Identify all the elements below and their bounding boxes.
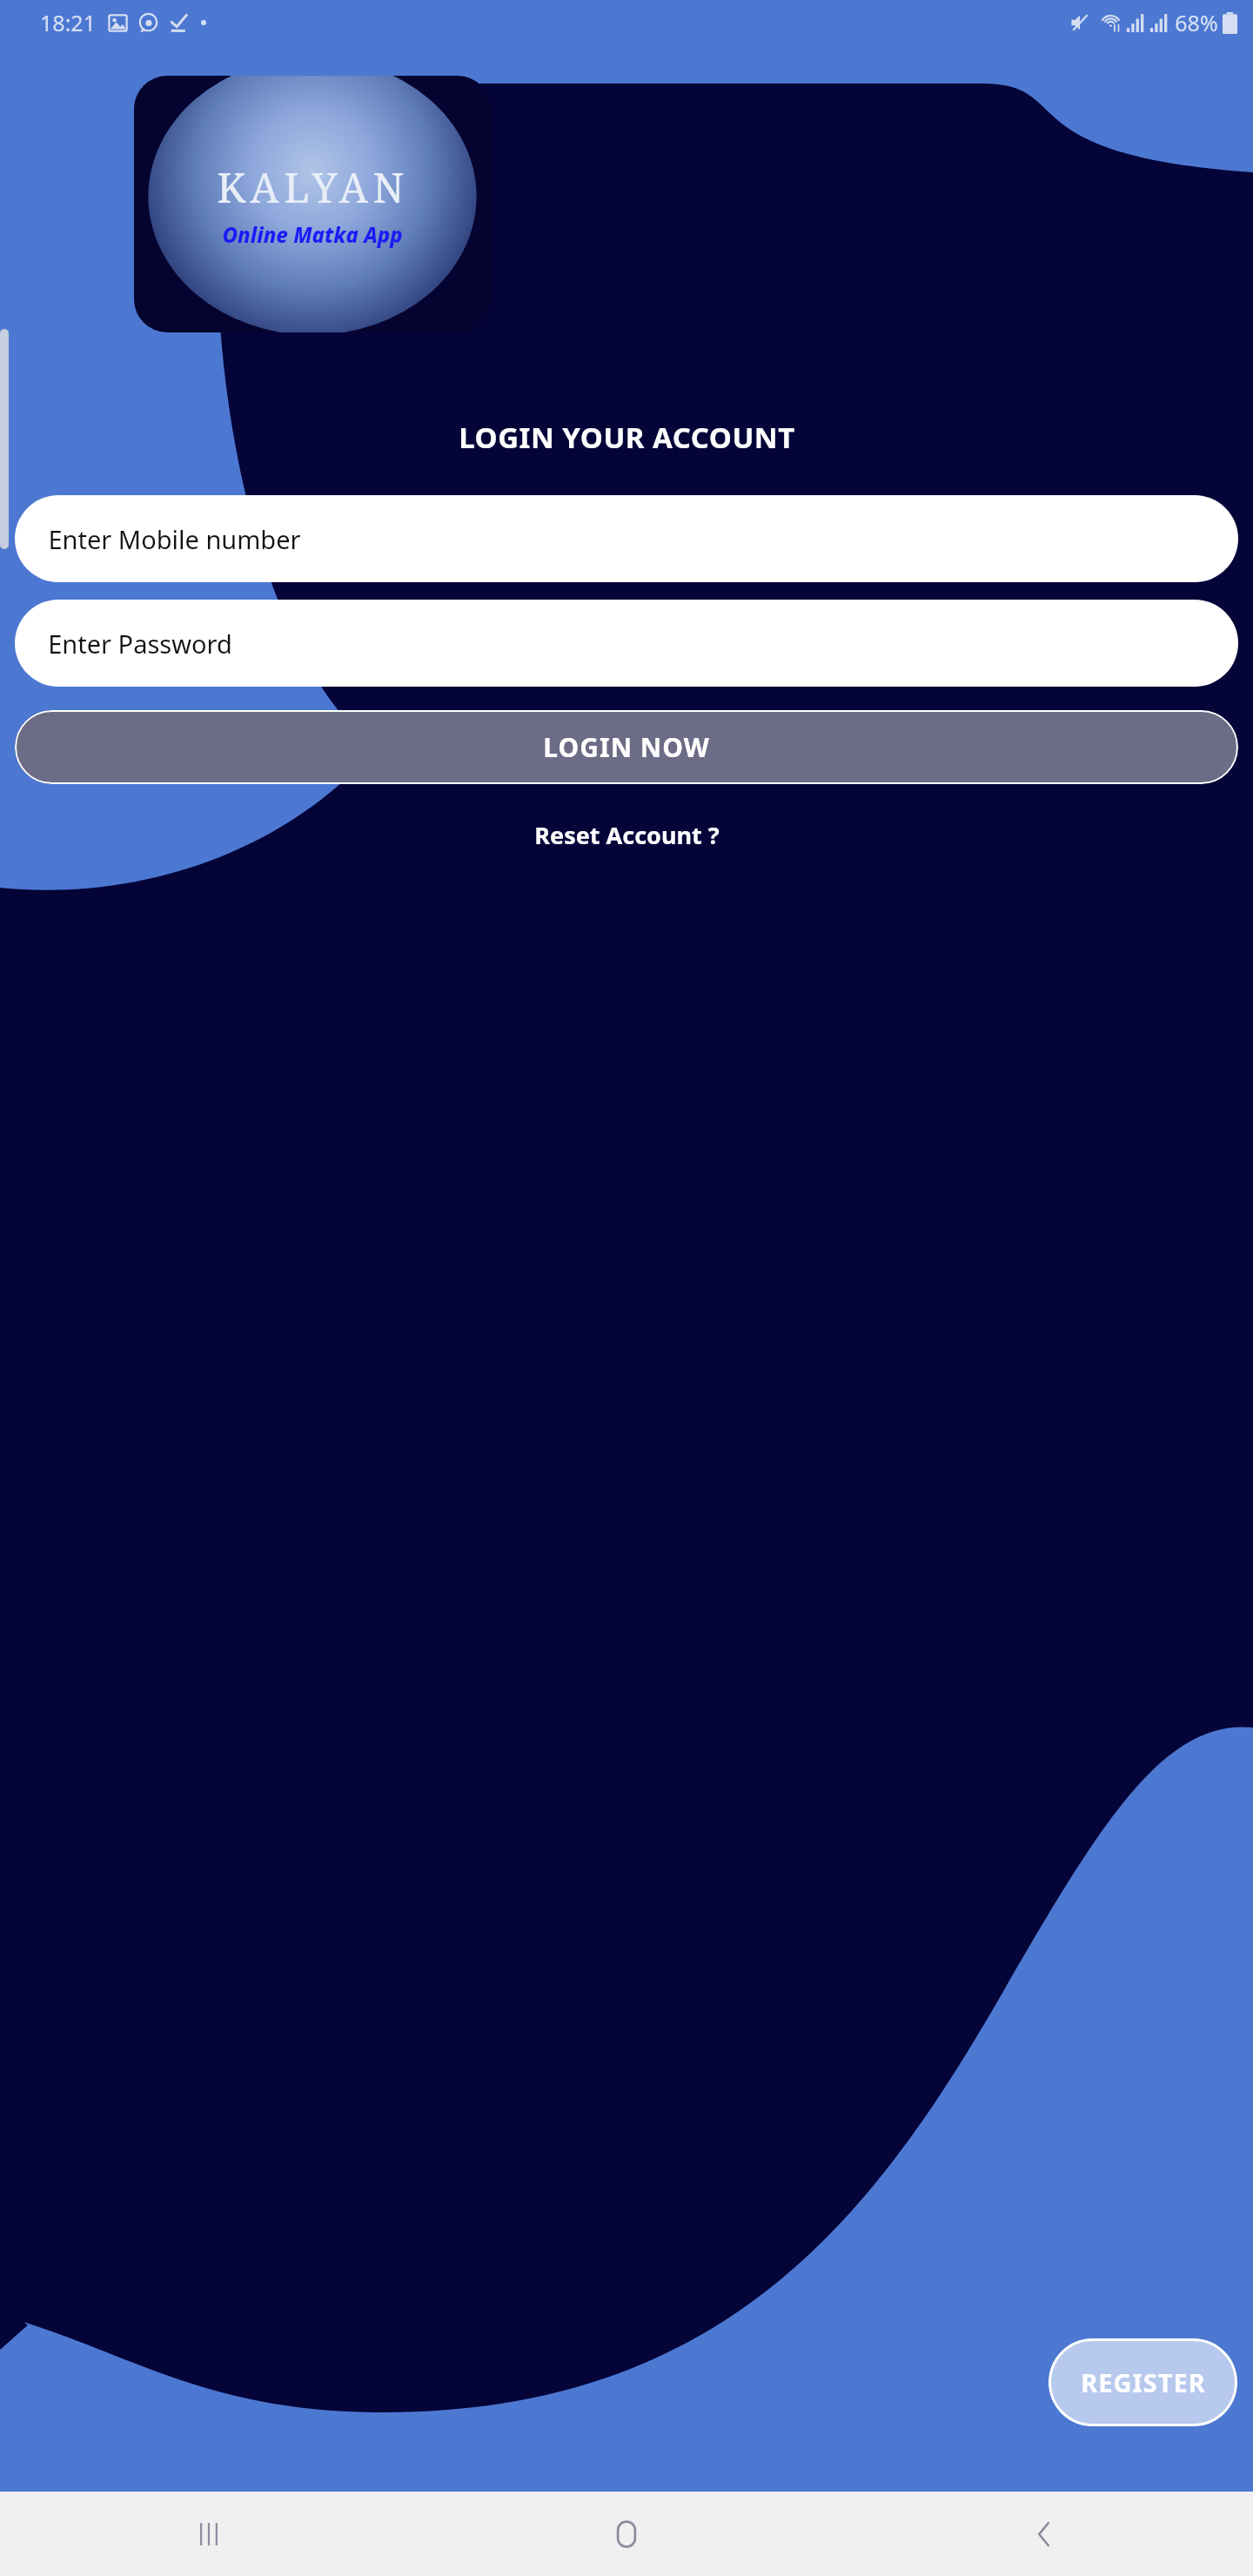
staticText: Online Matka App	[222, 220, 403, 249]
staticText: Reset Account ?	[534, 819, 720, 851]
staticText: Enter Mobile number	[48, 522, 301, 556]
button[interactable]: LOGIN NOW	[15, 710, 1238, 784]
staticText: KALYAN	[217, 159, 409, 215]
staticText: LOGIN YOUR ACCOUNT	[459, 418, 795, 457]
staticText: LOGIN NOW	[543, 729, 710, 765]
staticText: 68%	[1175, 8, 1218, 37]
button[interactable]: Reset Account ?	[526, 815, 728, 855]
staticText: Enter Password	[48, 627, 232, 661]
button[interactable]: Enter Password	[15, 600, 1238, 687]
staticText: REGISTER	[1081, 2365, 1206, 2399]
button[interactable]: REGISTER	[1049, 2338, 1237, 2426]
button[interactable]: Home	[418, 2492, 835, 2576]
staticText: 18:21	[40, 8, 96, 37]
button[interactable]: Recent apps	[0, 2492, 418, 2576]
button[interactable]: Back	[835, 2492, 1253, 2576]
button[interactable]: Enter Mobile number	[15, 495, 1238, 582]
